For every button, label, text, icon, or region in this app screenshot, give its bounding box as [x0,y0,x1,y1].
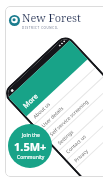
button[interactable]: Settings [51,85,103,152]
button[interactable]: New Forest District Council logo [9,10,81,30]
staticText: Community [17,154,45,161]
staticText: New Forest [22,10,81,25]
button[interactable]: User details [34,68,103,134]
staticText: Contact us [65,133,88,155]
staticText: More [21,91,41,111]
button[interactable]: Privacy [67,103,103,169]
other: New Forest District Council logo [9,15,20,26]
button[interactable]: Contact us [59,94,103,160]
staticText: Self service screening [48,98,90,138]
button[interactable]: About us [26,59,96,125]
staticText: Join the [22,132,40,139]
staticText: DISTRICT COUNCIL [22,26,59,30]
button[interactable]: Join the [8,124,52,168]
staticText: Settings [56,128,76,147]
staticText: About us [32,101,52,120]
staticText: Privacy [73,148,90,164]
staticText: 1.5M+ [14,139,47,154]
staticText: User details [40,105,65,129]
button[interactable]: Self service screening [42,77,103,143]
